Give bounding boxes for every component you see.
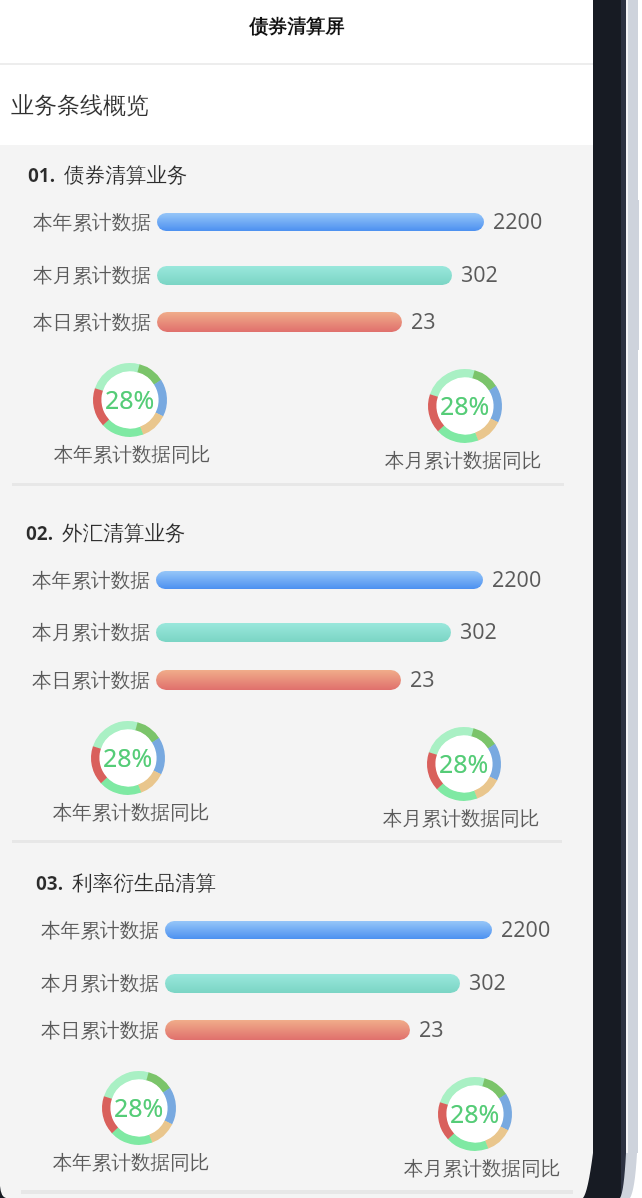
staticText: 302	[460, 616, 497, 645]
staticText: 本月累计数据同比	[362, 1156, 602, 1181]
staticText: 本月累计数据同比	[341, 806, 581, 831]
button[interactable]: 本年累计数据	[10, 915, 556, 945]
staticText: 23	[419, 1014, 444, 1043]
staticText: 2200	[492, 564, 542, 593]
staticText: 302	[461, 259, 498, 288]
button[interactable]: 本年累计数据	[1, 565, 547, 595]
button[interactable]: 本月累计数据	[1, 617, 515, 647]
staticText: 债券清算业务	[64, 162, 188, 188]
staticText: 外汇清算业务	[62, 520, 186, 546]
button[interactable]: 28%	[345, 363, 585, 473]
button[interactable]: 28%	[19, 1065, 259, 1175]
button[interactable]: 28%	[344, 721, 584, 831]
button[interactable]: 本日累计数据	[2, 307, 466, 337]
staticText: 利率衍生品清算	[72, 870, 217, 896]
button[interactable]: 01.	[28, 159, 188, 191]
staticText: 03.	[36, 870, 64, 896]
button[interactable]: 本日累计数据	[10, 1015, 474, 1045]
staticText: 23	[410, 664, 435, 693]
staticText: 28%	[450, 1096, 500, 1130]
staticText: 本日累计数据	[41, 1018, 160, 1043]
button[interactable]: 28%	[10, 357, 250, 467]
staticText: 本年累计数据	[32, 568, 151, 593]
staticText: 本年累计数据同比	[11, 1150, 251, 1175]
staticText: 302	[469, 967, 506, 996]
staticText: 本年累计数据	[41, 918, 160, 943]
button[interactable]: 02.	[26, 517, 186, 549]
staticText: 28%	[114, 1090, 164, 1124]
staticText: 本月累计数据	[41, 971, 160, 996]
staticText: 本月累计数据	[32, 620, 151, 645]
staticText: 本年累计数据同比	[11, 800, 251, 825]
staticText: 本年累计数据	[33, 210, 152, 235]
staticText: 01.	[28, 162, 56, 188]
staticText: 本日累计数据	[33, 310, 152, 335]
staticText: 28%	[103, 740, 153, 774]
staticText: 本月累计数据同比	[343, 448, 583, 473]
staticText: 28%	[439, 746, 489, 780]
button[interactable]: 本月累计数据	[10, 968, 524, 998]
staticText: 债券清算屏	[249, 15, 344, 39]
staticText: 28%	[440, 388, 490, 422]
button[interactable]: 03.	[36, 867, 217, 899]
staticText: 业务条线概览	[11, 91, 149, 120]
staticText: 02.	[26, 520, 54, 546]
button[interactable]: 本日累计数据	[1, 665, 465, 695]
button[interactable]: 本月累计数据	[2, 260, 516, 290]
staticText: 2200	[501, 914, 551, 943]
staticText: 2200	[493, 206, 543, 235]
button[interactable]: 28%	[8, 715, 248, 825]
staticText: 28%	[105, 382, 155, 416]
button[interactable]: 本年累计数据	[2, 207, 548, 237]
staticText: 本日累计数据	[32, 668, 151, 693]
button[interactable]: 28%	[355, 1071, 595, 1181]
staticText: 23	[411, 306, 436, 335]
staticText: 本年累计数据同比	[12, 442, 252, 467]
staticText: 本月累计数据	[33, 263, 152, 288]
